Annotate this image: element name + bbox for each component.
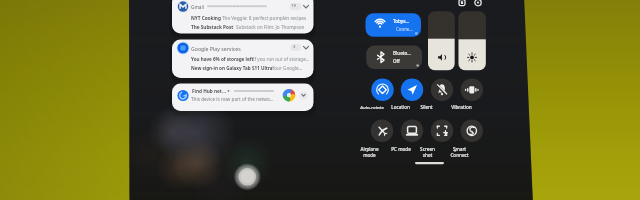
staticText: Conne… [396, 26, 413, 32]
staticText: 3 [293, 44, 296, 50]
staticText: Location [391, 104, 410, 110]
staticText: Vibration [451, 104, 472, 110]
staticText: Screen shot [420, 146, 435, 158]
staticText: 19 [291, 3, 296, 9]
staticText: The Veggie: 8 perfect pumpkin recipes [222, 15, 307, 21]
button[interactable]: Tablet quick settings panel [0, 0, 640, 200]
staticText: Google Play services [191, 45, 241, 52]
staticText: Your Google… [272, 65, 303, 71]
staticText: Silent [420, 104, 433, 110]
staticText: This device is now part of the netwo… [191, 96, 274, 102]
staticText: NYT Cooking [191, 15, 221, 21]
staticText: Auto-rotate [360, 104, 384, 110]
staticText: Airplane mode [360, 146, 379, 158]
staticText: Substack on Film: Jo Thompson [236, 24, 305, 30]
staticText: The Substack Post [191, 24, 234, 30]
staticText: Gmail [191, 4, 204, 10]
staticText: Tobys… [393, 18, 410, 24]
staticText: New sign-in on Galaxy Tab S11 Ultra [191, 65, 273, 71]
staticText: Off [393, 58, 400, 64]
staticText: Blueto… [393, 50, 412, 56]
staticText: PC mode [391, 146, 411, 152]
staticText: Find Hub net… [192, 88, 226, 94]
staticText: If you run out of storage… [253, 56, 310, 62]
staticText: You have 6% of storage left [191, 56, 254, 62]
staticText: Smart Connect [450, 146, 469, 158]
